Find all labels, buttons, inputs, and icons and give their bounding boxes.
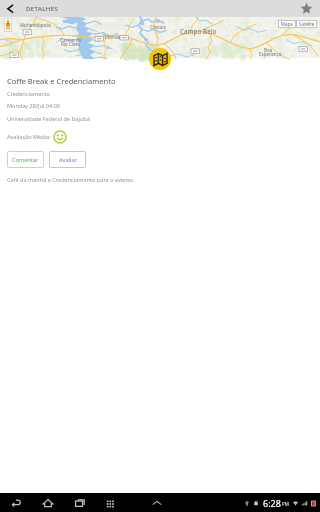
staticText: 6:28 bbox=[263, 497, 281, 509]
staticText: Satélite bbox=[299, 21, 315, 27]
button[interactable]: Street view bbox=[4, 18, 12, 32]
staticText: Comentar bbox=[12, 156, 39, 164]
staticText: Avaliação Média: bbox=[7, 133, 51, 141]
staticText: Café da manhã e Credenciamento para o ev… bbox=[7, 176, 135, 184]
staticText: DETALHES bbox=[26, 4, 59, 12]
staticText: Coffe Break e Credenciamento bbox=[7, 76, 116, 86]
staticText: PM bbox=[282, 501, 289, 507]
staticText: Universidade Federal de Itajubá bbox=[7, 115, 90, 123]
button[interactable]: Show on map bbox=[149, 48, 171, 70]
staticText: Carmo do bbox=[60, 37, 82, 43]
staticText: Rio Claro bbox=[61, 41, 81, 47]
staticText: Avaliar bbox=[59, 156, 77, 164]
button[interactable]: Home bbox=[41, 496, 55, 510]
staticText: Cristais bbox=[150, 24, 166, 30]
staticText: Esperança bbox=[259, 51, 282, 57]
staticText: Ilicínea bbox=[105, 34, 121, 40]
button[interactable]: Comentar bbox=[7, 151, 44, 168]
staticText: Alphendópolis bbox=[20, 22, 51, 28]
staticText: Mapa bbox=[281, 21, 293, 27]
staticText: Credenciamento bbox=[7, 90, 51, 98]
button[interactable]: Avaliar bbox=[49, 151, 86, 168]
button[interactable]: Favorite bbox=[300, 2, 313, 15]
button[interactable]: Back bbox=[9, 496, 23, 510]
staticText: Monday 28/Jul 04:00 bbox=[7, 102, 61, 110]
button[interactable]: Expand bbox=[150, 496, 164, 510]
button[interactable]: Recent apps bbox=[73, 496, 87, 510]
staticText: Boa bbox=[264, 47, 273, 53]
button[interactable]: Satélite bbox=[296, 20, 317, 28]
button[interactable]: All apps bbox=[103, 496, 117, 510]
button[interactable]: Mapa bbox=[278, 20, 296, 28]
button[interactable]: Back bbox=[4, 2, 17, 15]
staticText: Campo Belo bbox=[180, 27, 217, 36]
